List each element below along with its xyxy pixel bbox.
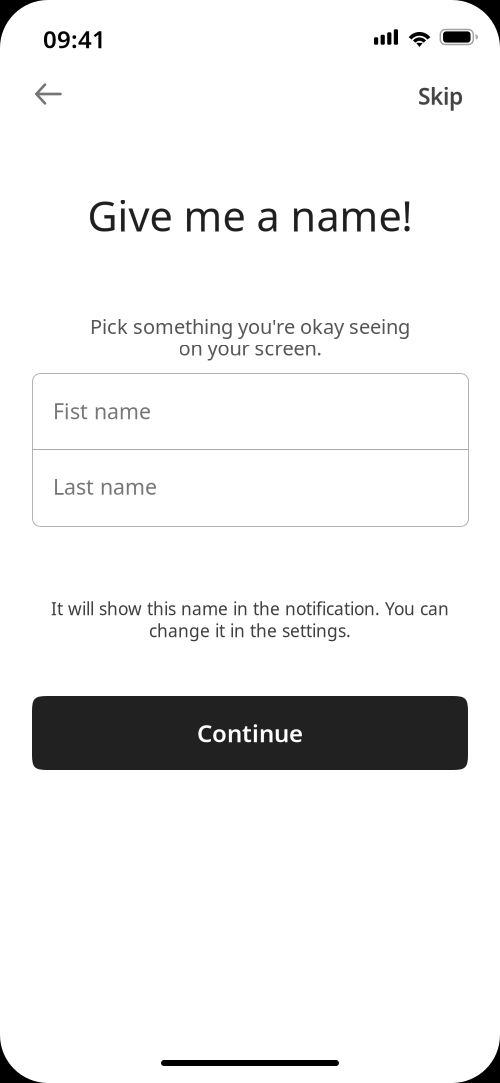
staticText: Fist name <box>53 397 151 425</box>
staticText: 09:41 <box>43 23 106 55</box>
button[interactable]: Continue <box>32 696 468 770</box>
button[interactable]: Skip <box>405 67 476 125</box>
staticText: Last name <box>53 472 157 501</box>
staticText: Give me a name! <box>87 188 412 243</box>
staticText: Continue <box>197 717 303 749</box>
staticText: change it in the settings. <box>149 619 351 642</box>
staticText: Skip <box>418 81 463 111</box>
staticText: on your screen. <box>178 335 321 361</box>
button[interactable]: Back <box>22 70 75 118</box>
staticText: It will show this name in the notificati… <box>51 597 449 620</box>
staticText: Pick something you're okay seeing <box>90 313 410 340</box>
